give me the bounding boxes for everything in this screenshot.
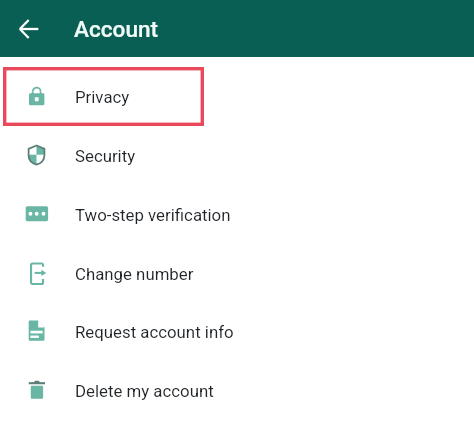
button[interactable]: Security <box>0 126 474 185</box>
staticText: Request account info <box>75 322 234 342</box>
button[interactable]: Two-step verification <box>0 185 474 244</box>
button[interactable]: Change number <box>0 244 474 303</box>
button[interactable]: Navigate up <box>7 7 51 51</box>
staticText: Delete my account <box>75 381 214 401</box>
staticText: Privacy <box>75 87 130 107</box>
staticText: Two-step verification <box>75 205 231 225</box>
staticText: Account <box>74 16 159 42</box>
staticText: Change number <box>75 264 194 284</box>
button[interactable]: Request account info <box>0 302 474 361</box>
staticText: Security <box>75 146 136 166</box>
button[interactable]: Privacy <box>0 67 474 126</box>
button[interactable]: Delete my account <box>0 361 474 420</box>
